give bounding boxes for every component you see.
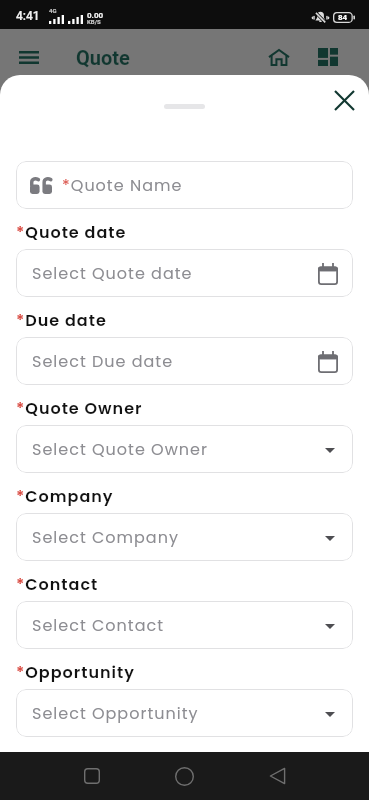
button[interactable]: Menu bbox=[1, 29, 57, 85]
staticText: Select Opportunity bbox=[32, 702, 199, 724]
button[interactable]: Recents bbox=[70, 754, 114, 798]
button[interactable]: Select Quote Owner bbox=[16, 425, 353, 473]
button[interactable]: Select Due date bbox=[16, 337, 353, 385]
button[interactable]: Select Opportunity bbox=[16, 689, 353, 737]
button[interactable]: Select Contact bbox=[16, 601, 353, 649]
staticText: 4:41 bbox=[16, 9, 40, 23]
staticText: 0.00 bbox=[87, 11, 104, 20]
staticText: Select Quote date bbox=[32, 262, 193, 284]
button[interactable]: Home bbox=[162, 754, 206, 798]
staticText: Select Contact bbox=[32, 614, 164, 636]
staticText: Quote bbox=[76, 46, 130, 69]
button[interactable]: Select Company bbox=[16, 513, 353, 561]
staticText: *Due date bbox=[16, 309, 107, 331]
button[interactable]: Back bbox=[255, 754, 299, 798]
staticText: *Quote date bbox=[16, 221, 127, 243]
staticText: Select Company bbox=[32, 526, 179, 548]
staticText: Select Quote Owner bbox=[32, 438, 208, 460]
button[interactable]: Close bbox=[322, 78, 366, 122]
staticText: Select Due date bbox=[32, 350, 174, 372]
button[interactable]: Dashboard bbox=[300, 29, 356, 85]
staticText: *Quote Name bbox=[62, 174, 183, 196]
staticText: KB/S bbox=[87, 18, 101, 25]
button[interactable]: *Quote Name bbox=[16, 161, 353, 209]
staticText: 84 bbox=[338, 13, 348, 22]
button[interactable]: Select Quote date bbox=[16, 249, 353, 297]
staticText: *Company bbox=[16, 485, 114, 507]
staticText: *Contact bbox=[16, 573, 99, 595]
staticText: *Quote Owner bbox=[16, 397, 143, 419]
staticText: 4G bbox=[49, 7, 57, 14]
staticText: *Opportunity bbox=[16, 661, 135, 683]
button[interactable]: Home bbox=[251, 29, 307, 85]
